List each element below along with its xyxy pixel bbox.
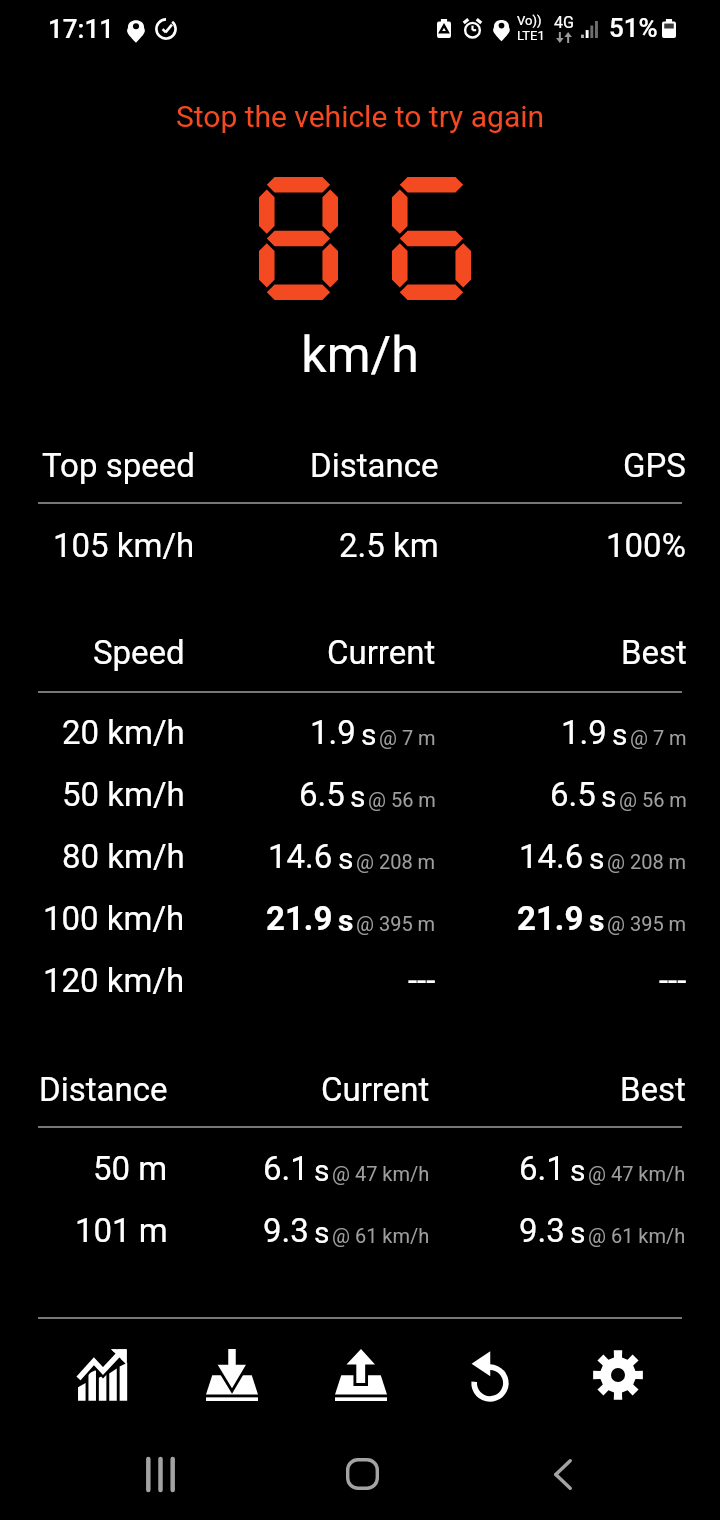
staticText: 50 m [93, 1149, 168, 1188]
staticText: s [338, 841, 354, 876]
staticText: s [314, 1215, 330, 1250]
staticText: @ 208 m [356, 850, 436, 873]
staticText: 101 m [75, 1211, 168, 1250]
staticText: km/h [0, 326, 720, 385]
staticText: 120 km/h [43, 961, 185, 1000]
staticText: @ 56 m [619, 788, 687, 811]
staticText: 1.9 [310, 713, 356, 752]
staticText: 80 km/h [62, 837, 185, 876]
staticText: GPS [623, 446, 686, 485]
staticText: LTE1 [517, 28, 545, 43]
staticText: 51% [609, 13, 658, 43]
staticText: Distance [310, 446, 439, 485]
staticText: --- [408, 961, 436, 1000]
staticText: s [570, 1153, 586, 1188]
staticText: 20 km/h [62, 713, 185, 752]
staticText: 21.9 [266, 899, 333, 938]
staticText: 9.3 [263, 1211, 309, 1250]
staticText: --- [659, 961, 687, 1000]
button[interactable]: Import [167, 1319, 296, 1431]
staticText: 6.5 [299, 775, 345, 814]
staticText: 17:11 [48, 14, 114, 44]
staticText: 4G [554, 13, 574, 32]
staticText: Best [621, 633, 687, 672]
staticText: s [361, 717, 377, 752]
staticText: @ 7 m [379, 726, 436, 749]
staticText: 14.6 [519, 837, 584, 876]
staticText: 14.6 [268, 837, 333, 876]
button[interactable]: Reset [425, 1319, 554, 1431]
staticText: s [612, 717, 628, 752]
staticText: Vo)) [517, 13, 542, 28]
staticText: @ 61 km/h [332, 1224, 430, 1247]
button[interactable]: Back [515, 1439, 611, 1509]
staticText: 21.9 [517, 899, 584, 938]
staticText: @ 61 km/h [588, 1224, 686, 1247]
button[interactable]: Export [296, 1319, 425, 1431]
staticText: Current [327, 633, 436, 672]
staticText: @ 208 m [607, 850, 687, 873]
staticText: Distance [39, 1070, 168, 1109]
staticText: s [350, 779, 366, 814]
staticText: @ 47 km/h [332, 1162, 430, 1185]
staticText: s [314, 1153, 330, 1188]
staticText: 2.5 km [339, 526, 439, 565]
staticText: Stop the vehicle to try again [0, 99, 720, 134]
staticText: @ 395 m [356, 912, 436, 935]
staticText: @ 7 m [630, 726, 687, 749]
button[interactable]: Statistics [38, 1319, 167, 1431]
staticText: 100 km/h [43, 899, 185, 938]
staticText: s [338, 903, 354, 938]
staticText: Top speed [42, 446, 195, 485]
staticText: @ 47 km/h [588, 1162, 686, 1185]
staticText: 6.5 [550, 775, 596, 814]
staticText: 105 km/h [53, 526, 195, 565]
staticText: 1.9 [561, 713, 607, 752]
staticText: @ 395 m [607, 912, 687, 935]
staticText: 6.1 [263, 1149, 309, 1188]
staticText: @ 56 m [368, 788, 436, 811]
staticText: 6.1 [519, 1149, 565, 1188]
staticText: Best [620, 1070, 686, 1109]
button[interactable]: Recent apps [112, 1439, 208, 1509]
staticText: s [570, 1215, 586, 1250]
staticText: s [601, 779, 617, 814]
staticText: 100% [606, 526, 686, 565]
button[interactable]: Settings [554, 1319, 682, 1431]
button[interactable]: Home [314, 1439, 410, 1509]
staticText: 50 km/h [62, 775, 185, 814]
staticText: Current [321, 1070, 430, 1109]
staticText: s [589, 903, 605, 938]
staticText: Speed [93, 633, 185, 672]
staticText: 9.3 [519, 1211, 565, 1250]
staticText: s [589, 841, 605, 876]
